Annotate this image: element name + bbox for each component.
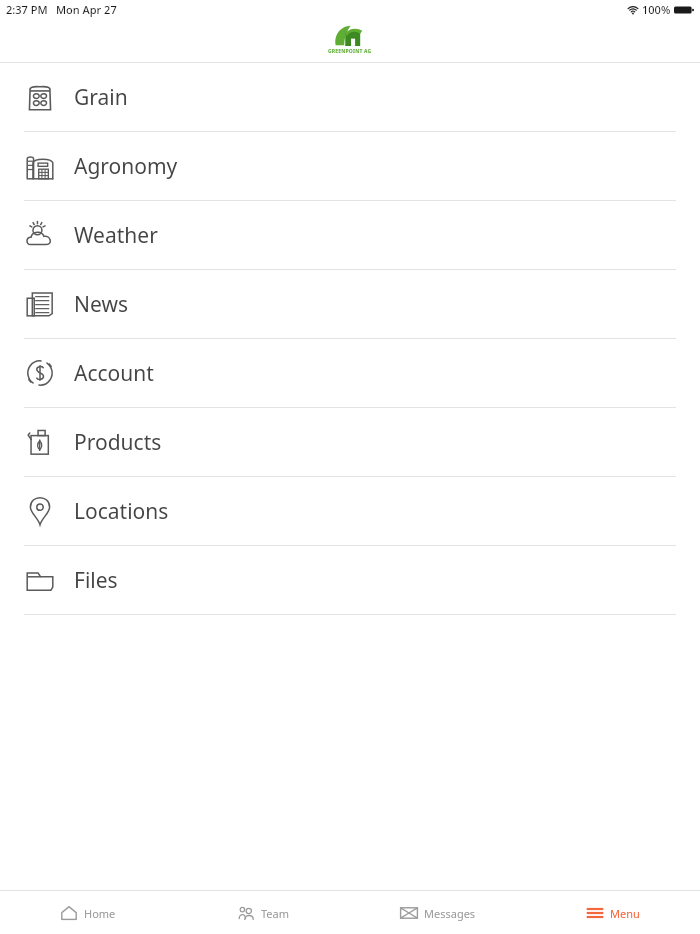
staticText: Files <box>74 566 118 595</box>
staticText: GREENPOINT AG <box>328 48 372 55</box>
staticText: News <box>74 290 128 319</box>
button[interactable]: Team <box>175 891 350 934</box>
button[interactable]: Files <box>0 546 700 614</box>
button[interactable]: Agronomy <box>0 132 700 200</box>
staticText: Agronomy <box>74 152 178 181</box>
staticText: Account <box>74 359 154 388</box>
button[interactable]: Grain <box>0 63 700 131</box>
staticText: Grain <box>74 83 128 112</box>
staticText: Mon Apr 27 <box>56 2 117 17</box>
button[interactable]: Locations <box>0 477 700 545</box>
staticText: Menu <box>610 906 640 921</box>
button[interactable]: Menu <box>525 891 700 934</box>
staticText: Locations <box>74 497 169 526</box>
button[interactable]: Account <box>0 339 700 407</box>
button[interactable]: Home <box>0 891 175 934</box>
button[interactable]: Messages <box>350 891 525 934</box>
staticText: Home <box>84 906 116 921</box>
staticText: Team <box>261 906 290 921</box>
staticText: Messages <box>424 906 476 921</box>
staticText: 2:37 PM <box>6 2 48 17</box>
staticText: Weather <box>74 221 158 250</box>
staticText: 100% <box>642 2 671 17</box>
button[interactable]: Weather <box>0 201 700 269</box>
button[interactable]: Products <box>0 408 700 476</box>
staticText: Products <box>74 428 162 457</box>
button[interactable]: News <box>0 270 700 338</box>
